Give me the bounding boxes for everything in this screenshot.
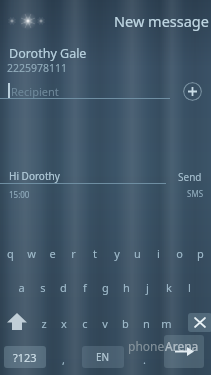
staticText: s: [40, 280, 46, 295]
staticText: a: [18, 280, 25, 295]
button[interactable]: u: [127, 242, 148, 264]
button[interactable]: y: [106, 242, 127, 264]
button[interactable]: p: [190, 242, 211, 264]
button[interactable]: s: [32, 276, 53, 298]
staticText: z: [41, 316, 47, 331]
staticText: e: [49, 246, 56, 261]
button[interactable]: x: [53, 312, 74, 334]
staticText: phone: [128, 338, 165, 354]
button[interactable]: Backspace: [188, 313, 211, 332]
button[interactable]: h: [116, 276, 137, 298]
staticText: k: [166, 280, 172, 295]
button[interactable]: t: [84, 242, 105, 264]
button[interactable]: r: [63, 242, 84, 264]
button[interactable]: ?123: [4, 346, 46, 368]
button[interactable]: f: [74, 276, 95, 298]
staticText: b: [122, 316, 129, 331]
staticText: q: [7, 246, 14, 261]
staticText: 2225978111: [7, 61, 68, 75]
button[interactable]: n: [136, 312, 157, 334]
staticText: d: [60, 280, 67, 295]
button[interactable]: Add recipient: [183, 82, 202, 101]
button[interactable]: e: [42, 242, 63, 264]
button[interactable]: Shift: [2, 308, 32, 334]
staticText: c: [82, 316, 88, 331]
staticText: Arena: [165, 338, 199, 354]
staticText: w: [27, 246, 36, 261]
staticText: 15:00: [9, 189, 30, 200]
button[interactable]: EN: [82, 346, 124, 368]
staticText: g: [102, 280, 109, 295]
button[interactable]: w: [21, 242, 42, 264]
staticText: ,: [62, 352, 65, 367]
button[interactable]: g: [95, 276, 116, 298]
staticText: Hi Dorothy: [9, 169, 60, 183]
staticText: ?123: [13, 350, 37, 365]
button[interactable]: v: [94, 312, 115, 334]
staticText: x: [61, 316, 67, 331]
staticText: y: [114, 246, 120, 261]
staticText: i: [157, 246, 160, 261]
staticText: h: [123, 280, 130, 295]
button[interactable]: a: [11, 276, 32, 298]
button[interactable]: z: [33, 312, 54, 334]
staticText: u: [134, 246, 141, 261]
button[interactable]: b: [115, 312, 136, 334]
button[interactable]: k: [158, 276, 179, 298]
button[interactable]: q: [0, 242, 21, 264]
button[interactable]: c: [74, 312, 95, 334]
staticText: t: [93, 246, 97, 261]
button[interactable]: i: [148, 242, 169, 264]
staticText: Recipient: [11, 84, 59, 99]
staticText: j: [146, 280, 149, 295]
staticText: New message: [114, 11, 209, 31]
staticText: l: [188, 280, 191, 295]
button[interactable]: j: [137, 276, 158, 298]
button[interactable]: o: [169, 242, 190, 264]
button[interactable]: d: [53, 276, 74, 298]
staticText: r: [71, 246, 76, 261]
button[interactable]: m: [156, 312, 177, 334]
staticText: EN: [96, 350, 110, 364]
staticText: m: [161, 316, 172, 331]
staticText: Dorothy Gale: [9, 45, 87, 62]
staticText: .: [143, 352, 146, 367]
staticText: n: [143, 316, 150, 331]
staticText: f: [83, 280, 87, 295]
staticText: o: [176, 246, 183, 261]
staticText: v: [102, 316, 108, 331]
staticText: Send: [178, 170, 202, 184]
button[interactable]: l: [179, 276, 200, 298]
staticText: p: [197, 246, 204, 261]
staticText: SMS: [187, 188, 204, 199]
button[interactable]: Enter: [164, 335, 204, 368]
